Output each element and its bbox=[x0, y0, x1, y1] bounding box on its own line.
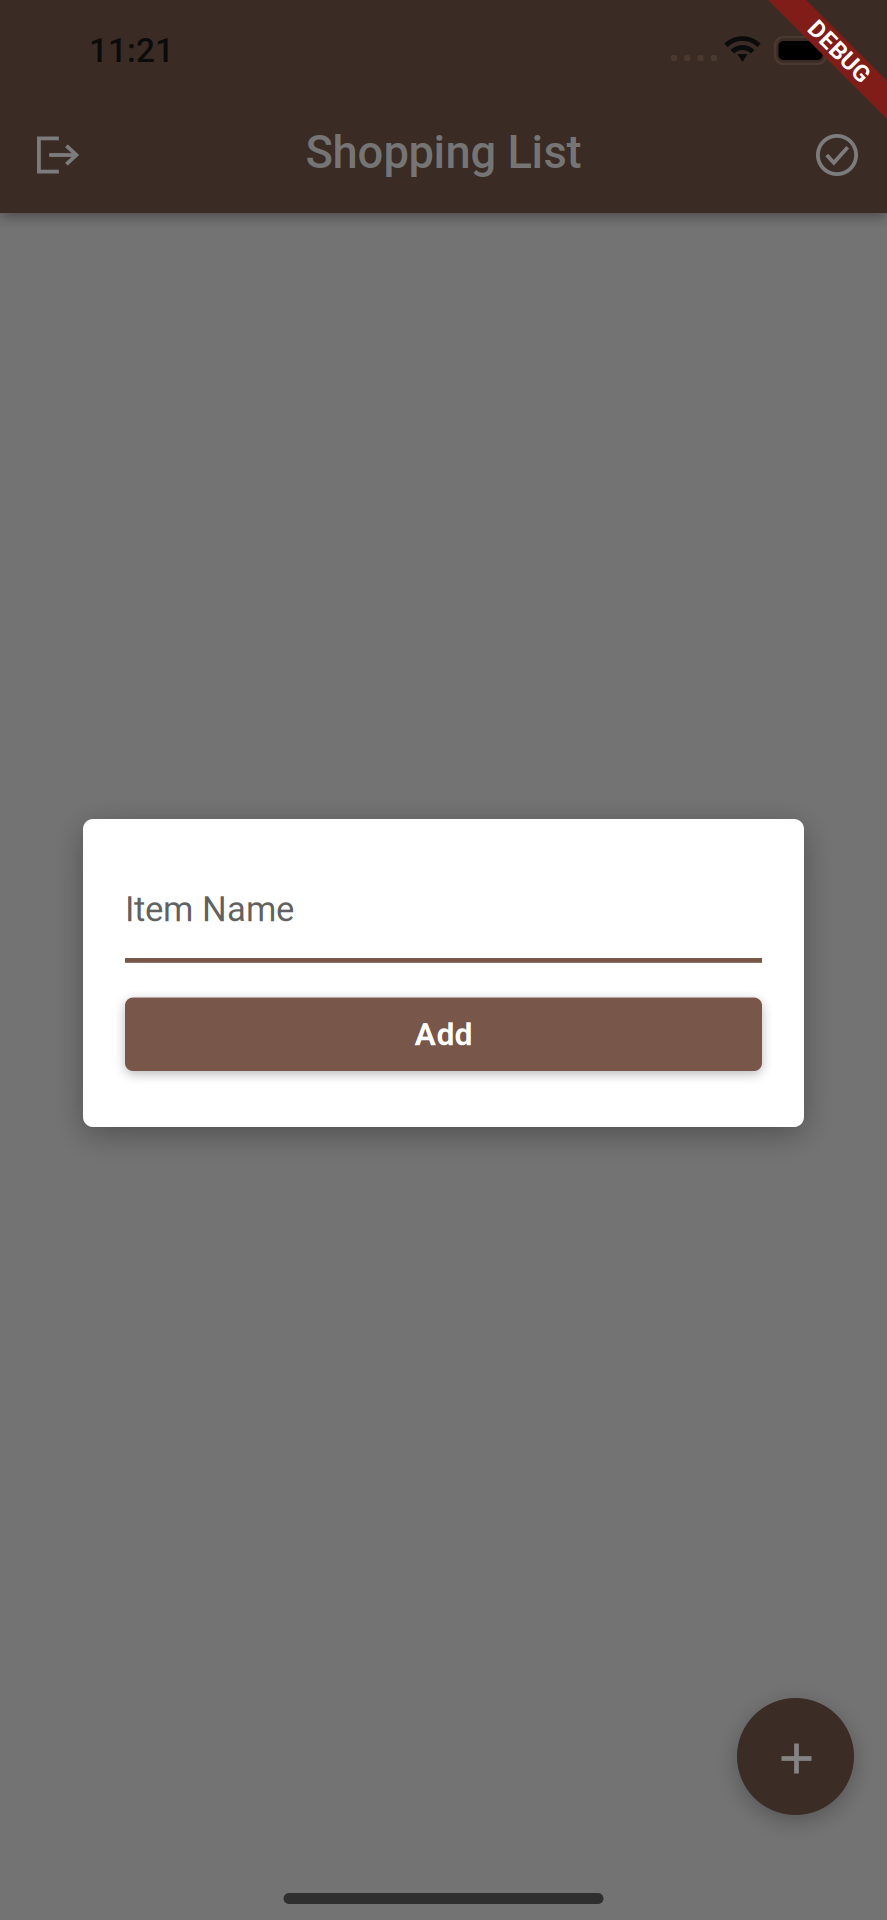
button[interactable]: Dismiss dialog bbox=[0, 0, 887, 1920]
staticText: 11:21 bbox=[89, 31, 174, 70]
staticText: Shopping List bbox=[305, 126, 581, 179]
staticText: DEBUG bbox=[801, 35, 878, 63]
button[interactable]: Mark all complete bbox=[797, 115, 877, 195]
staticText: Add bbox=[414, 1015, 472, 1053]
button[interactable]: Log out bbox=[18, 115, 98, 195]
staticText: Item Name bbox=[125, 889, 294, 930]
button[interactable]: Add bbox=[125, 997, 762, 1071]
button[interactable]: Add item bbox=[737, 1698, 854, 1815]
